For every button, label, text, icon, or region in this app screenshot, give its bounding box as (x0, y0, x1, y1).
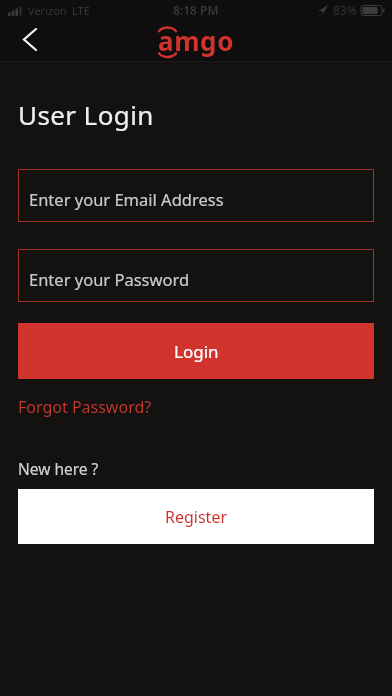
button[interactable]: Enter your Email Address (18, 169, 374, 222)
staticText: Enter your Email Address (29, 188, 224, 210)
staticText: Login (174, 340, 219, 363)
staticText: 8:18 PM (173, 2, 219, 18)
staticText: LTE (72, 3, 90, 18)
staticText: Register (165, 506, 228, 528)
button[interactable] (14, 24, 44, 54)
staticText: 83% (333, 2, 357, 18)
staticText: Enter your Password (29, 268, 190, 290)
button[interactable]: Register (18, 489, 374, 544)
staticText: Verizon (28, 3, 67, 18)
staticText: New here ? (18, 458, 99, 479)
button[interactable]: Enter your Password (18, 249, 374, 302)
button[interactable]: Login (18, 323, 374, 379)
staticText: User Login (18, 97, 154, 132)
staticText: amgo (158, 23, 235, 58)
button[interactable]: Forgot Password? (18, 396, 152, 418)
